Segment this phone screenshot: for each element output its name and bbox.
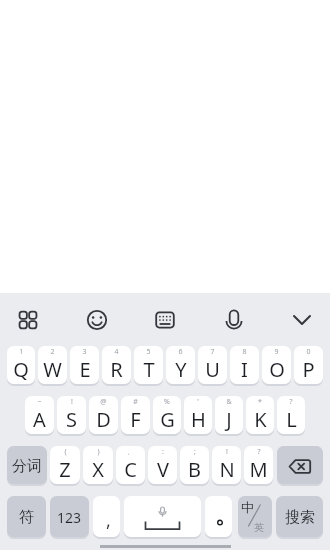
staticText: S [66,406,77,433]
button[interactable]: 符 [7,496,46,539]
staticText: T [143,356,155,383]
staticText: 2 [50,347,55,357]
button[interactable]: * [246,396,274,436]
button[interactable]: 8 [230,346,259,386]
staticText: * [258,397,262,407]
staticText: B [188,456,201,483]
staticText: ! [71,397,73,407]
staticText: ) [97,447,100,457]
button[interactable]: ? [277,396,305,436]
button[interactable]: ' [184,396,212,436]
staticText: 3 [82,347,87,357]
button[interactable]: 3 [70,346,99,386]
button[interactable]: 2 [38,346,67,386]
staticText: J [226,406,232,433]
staticText: # [133,397,138,407]
staticText: N [219,456,235,483]
button[interactable] [18,310,38,330]
button[interactable]: ; [180,446,209,486]
button[interactable]: 123 [50,496,89,539]
staticText: ? [257,447,261,457]
staticText: 1 [19,347,24,357]
button[interactable]: , [93,496,120,539]
staticText: ; [194,447,196,457]
button[interactable]: 5 [134,346,163,386]
staticText: X [92,456,104,483]
staticText: I [241,356,248,383]
staticText: @ [100,397,107,407]
button[interactable]: 1 [7,346,35,386]
staticText: R [110,356,123,383]
button[interactable]: ~ [25,396,54,436]
staticText: W [43,356,62,383]
staticText: Q [13,356,29,383]
staticText: 符 [19,508,34,527]
staticText: 5 [146,347,151,357]
staticText: K [254,406,267,433]
staticText: D [96,406,111,433]
button[interactable] [155,310,175,330]
button[interactable]: @ [89,396,118,436]
staticText: & [226,397,232,407]
button[interactable]: # [121,396,150,436]
button[interactable]: : [148,446,177,486]
staticText: C [124,456,137,483]
button[interactable]: 6 [166,346,195,386]
staticText: U [205,356,220,383]
staticText: 、 [127,447,134,456]
staticText: F [130,406,141,433]
button[interactable]: 搜索 [276,496,323,539]
button[interactable]: ! [57,396,86,436]
staticText: ? [289,397,293,407]
staticText: L [286,406,297,433]
button[interactable] [87,310,107,330]
staticText: E [79,356,91,383]
staticText: 7 [210,347,215,357]
staticText: ' [197,397,199,407]
button[interactable]: 4 [102,346,131,386]
staticText: A [33,406,46,433]
button[interactable]: ! [212,446,241,486]
button[interactable] [277,446,323,486]
staticText: P [302,356,315,383]
button[interactable]: 分词 [7,446,47,486]
staticText: H [191,406,206,433]
staticText: 8 [242,347,247,357]
button[interactable] [292,310,312,330]
staticText: 中 [241,499,254,515]
button[interactable] [205,496,232,539]
button[interactable]: ) [83,446,113,486]
staticText: 123 [57,508,82,527]
button[interactable]: % [153,396,181,436]
staticText: O [269,356,285,383]
staticText: M [249,456,268,483]
button[interactable]: ? [244,446,273,486]
staticText: ( [64,447,67,457]
staticText: V [157,456,169,483]
staticText: Z [59,456,71,483]
staticText: 4 [114,347,119,357]
staticText: 9 [274,347,279,357]
button[interactable]: 中 [238,496,272,539]
staticText: 英 [254,521,264,534]
button[interactable] [224,310,244,330]
staticText: 6 [178,347,183,357]
staticText: 搜索 [285,508,315,527]
staticText: 0 [306,347,311,357]
staticText: 分词 [12,457,42,476]
button[interactable]: 、 [116,446,145,486]
button[interactable]: & [215,396,243,436]
staticText: , [106,508,111,533]
staticText: G [160,406,175,433]
staticText: : [162,447,164,457]
button[interactable]: 0 [294,346,323,386]
staticText: ! [226,447,228,457]
staticText: % [164,397,170,407]
button[interactable]: 9 [262,346,291,386]
staticText: Y [175,356,187,383]
button[interactable] [124,496,201,539]
staticText: ~ [37,397,42,407]
button[interactable]: ( [50,446,80,486]
button[interactable]: 7 [198,346,227,386]
